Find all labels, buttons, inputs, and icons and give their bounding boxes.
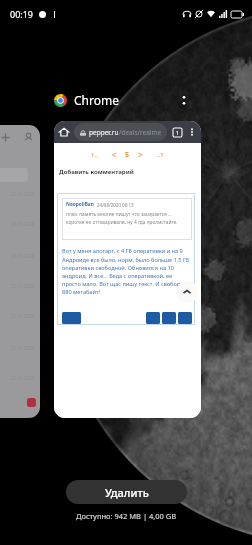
button[interactable]: Удалить <box>66 480 187 504</box>
staticText: NeopoliBan <box>66 201 94 208</box>
staticText: Добавить комментарий <box>59 168 134 176</box>
staticText: 22.10.2020 <box>11 221 35 227</box>
staticText: 1 <box>176 129 180 136</box>
staticText: 24/08/2020 00:13 <box>97 202 134 208</box>
staticText: Вот у меня алогарт, с 4 ГБ оперативки и … <box>62 247 192 295</box>
staticText: 22.10.2020 <box>11 375 35 381</box>
button[interactable]: More options <box>175 91 193 109</box>
other: Browser menu <box>187 127 197 137</box>
staticText: ..1 <box>157 151 164 159</box>
staticText: pepper.ru <box>89 128 119 137</box>
staticText: 22.10.2020 <box>11 191 35 197</box>
staticText: /deals/realme <box>119 128 162 137</box>
staticText: Chrome <box>74 92 119 108</box>
staticText: 22.10.2020 <box>11 345 35 351</box>
staticText: 22.10.2020 <box>11 253 35 259</box>
staticText: Удалить <box>105 485 149 500</box>
button[interactable]: 22.10.2020 <box>0 125 40 418</box>
button[interactable]: Share <box>178 312 192 324</box>
staticText: Доступно: 942 MB | 4,00 GB <box>76 511 177 521</box>
staticText: < <box>112 149 117 160</box>
staticText: 1.. <box>91 151 98 159</box>
staticText: 00:19 <box>10 8 34 20</box>
other: Home <box>59 127 69 137</box>
button[interactable]: Home <box>54 121 201 418</box>
button[interactable]: Like <box>162 312 176 324</box>
staticText: плюс память многие пишут что засирается … <box>66 211 188 225</box>
staticText: > <box>138 149 143 160</box>
button[interactable]: Quote <box>146 312 160 324</box>
staticText: 5 <box>125 150 130 160</box>
button[interactable]: Scroll to top <box>176 281 198 303</box>
button[interactable]: Reply <box>62 312 81 324</box>
staticText: 22.10.2020 <box>11 283 35 289</box>
staticText: 22.10.2020 <box>11 313 35 319</box>
